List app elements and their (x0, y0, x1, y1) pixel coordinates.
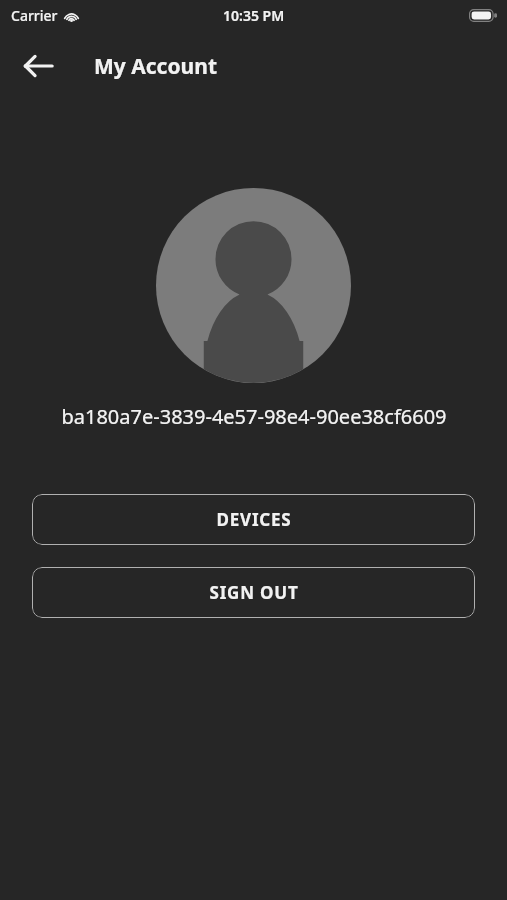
staticText: DEVICES (216, 508, 292, 531)
staticText: Carrier (11, 6, 58, 25)
staticText: ba180a7e-3839-4e57-98e4-90ee38cf6609 (61, 403, 447, 430)
button[interactable]: SIGN OUT (32, 567, 475, 618)
staticText: My Account (94, 52, 217, 81)
button[interactable]: DEVICES (32, 494, 475, 545)
button[interactable]: Back (16, 44, 60, 88)
staticText: SIGN OUT (209, 581, 299, 604)
staticText: 10:35 PM (223, 6, 285, 25)
